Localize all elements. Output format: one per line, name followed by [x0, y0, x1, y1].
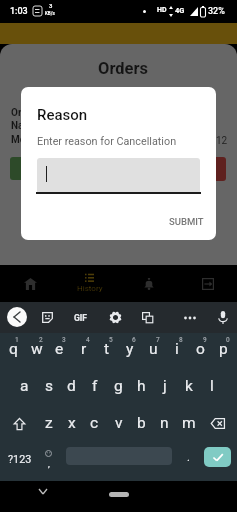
button[interactable]: w	[25, 333, 48, 370]
button[interactable]: a	[13, 370, 36, 407]
button[interactable]: l	[200, 370, 223, 407]
button[interactable]: Back	[7, 307, 27, 327]
staticText: 3	[62, 336, 66, 344]
staticText: Name : Rahul	[11, 120, 71, 132]
staticText: 6	[132, 336, 136, 344]
button[interactable]: v	[107, 407, 130, 444]
button[interactable]: Hide keyboard	[35, 483, 51, 499]
button[interactable]: n	[153, 407, 176, 444]
staticText: Order Id : 3451	[11, 107, 78, 119]
staticText: 9	[203, 336, 207, 344]
staticText: Reason	[37, 106, 88, 124]
staticText: x	[68, 414, 76, 432]
staticText: y	[126, 340, 134, 358]
button[interactable]: Enter	[204, 447, 231, 467]
staticText: d	[67, 377, 76, 395]
button[interactable]: More options	[183, 302, 197, 333]
button[interactable]: GIF	[71, 302, 89, 333]
button[interactable]: k	[177, 370, 200, 407]
staticText: SUBMIT	[169, 216, 204, 227]
staticText: h	[137, 377, 146, 395]
staticText: t	[104, 340, 110, 358]
button[interactable]: m	[177, 407, 200, 444]
staticText: GIF	[74, 313, 87, 323]
button[interactable]: p	[212, 333, 235, 370]
staticText: q	[9, 340, 18, 358]
button[interactable]: g	[107, 370, 130, 407]
button[interactable]: y	[118, 333, 141, 370]
staticText: p	[219, 340, 228, 358]
staticText: s	[45, 377, 53, 395]
button[interactable]: Logout	[178, 265, 237, 302]
staticText: j	[163, 377, 167, 395]
staticText: Enter reason for Cancellation	[37, 135, 177, 148]
staticText: v	[115, 414, 123, 432]
button[interactable]: Voice input	[216, 302, 230, 333]
staticText: a	[20, 377, 29, 395]
button[interactable]: Settings	[108, 302, 122, 333]
button[interactable]: z	[37, 407, 60, 444]
button[interactable]: d	[60, 370, 83, 407]
button[interactable]: Stickers	[40, 302, 54, 333]
staticText: k	[185, 377, 193, 395]
button[interactable]: r	[72, 333, 95, 370]
staticText: History	[77, 284, 103, 293]
staticText: m	[182, 414, 196, 432]
button[interactable]: ?123	[2, 444, 37, 481]
button[interactable]: .	[178, 444, 199, 481]
button[interactable]	[37, 158, 200, 192]
staticText: KB/s	[45, 11, 55, 16]
staticText: 32%	[208, 6, 225, 17]
button[interactable]: f	[83, 370, 106, 407]
staticText: 12	[216, 135, 228, 147]
staticText: n	[160, 414, 169, 432]
staticText: ?123	[8, 453, 32, 466]
button[interactable]: o	[189, 333, 212, 370]
staticText: 4	[86, 336, 90, 344]
button[interactable]	[10, 157, 72, 180]
staticText: b	[137, 414, 146, 432]
staticText: 2	[39, 336, 43, 344]
staticText: HD	[157, 6, 167, 14]
button[interactable]: j	[153, 370, 176, 407]
button[interactable]: t	[95, 333, 118, 370]
button[interactable]: s	[37, 370, 60, 407]
button[interactable]	[216, 157, 226, 181]
button[interactable]: i	[165, 333, 188, 370]
button[interactable]: q	[2, 333, 25, 370]
button[interactable]: History	[60, 265, 119, 302]
button[interactable]: h	[130, 370, 153, 407]
button[interactable]: Backspace	[200, 407, 235, 444]
staticText: 3	[49, 2, 53, 9]
staticText: w	[31, 340, 43, 358]
staticText: e	[55, 340, 64, 358]
staticText: 4G	[175, 6, 185, 15]
button[interactable]: SUBMIT	[162, 211, 210, 232]
staticText: i	[175, 340, 179, 358]
staticText: 0	[226, 336, 230, 344]
staticText: 8	[179, 336, 183, 344]
staticText: 1	[15, 336, 19, 344]
button[interactable]: b	[130, 407, 153, 444]
staticText: Mobile : 98765	[11, 134, 79, 146]
button[interactable]: Home	[0, 265, 60, 302]
button[interactable]: x	[60, 407, 83, 444]
button[interactable]: Emoji	[37, 444, 59, 481]
staticText: o	[196, 340, 205, 358]
staticText: ,	[48, 459, 50, 470]
button[interactable]: Notifications	[119, 265, 178, 302]
staticText: c	[90, 414, 99, 432]
button[interactable]: e	[48, 333, 71, 370]
button[interactable]: u	[142, 333, 165, 370]
button[interactable]: Translate	[140, 302, 154, 333]
button[interactable]: c	[83, 407, 106, 444]
staticText: 7	[156, 336, 160, 344]
staticText: r	[81, 340, 87, 358]
staticText: g	[114, 377, 123, 395]
staticText: u	[149, 340, 158, 358]
button[interactable]: Shift	[2, 407, 37, 444]
staticText: .	[187, 451, 190, 464]
staticText: f	[92, 377, 98, 395]
staticText: Orders	[98, 59, 148, 78]
